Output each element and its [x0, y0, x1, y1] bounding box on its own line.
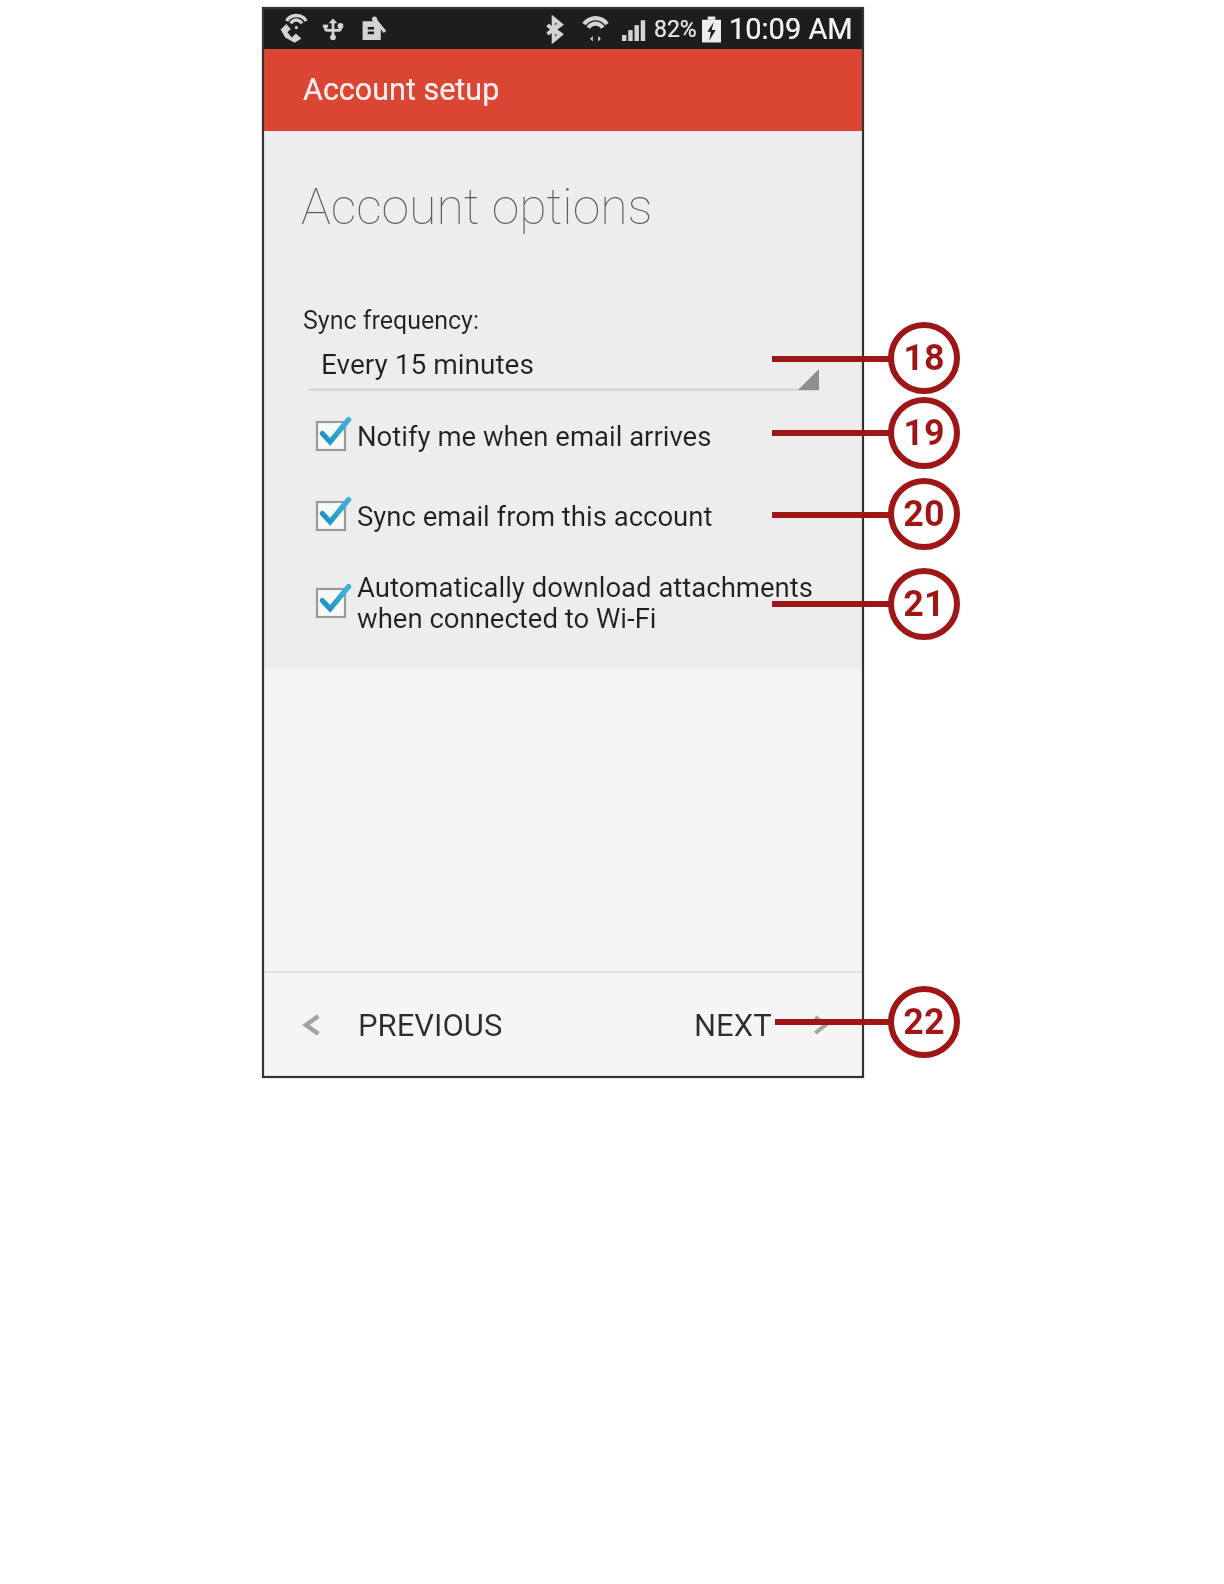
- staticText: 20: [903, 493, 945, 535]
- staticText: 10:09 AM: [729, 12, 853, 46]
- staticText: Notify me when email arrives: [357, 420, 712, 452]
- staticText: 82%: [654, 16, 697, 43]
- staticText: NEXT: [694, 1007, 772, 1043]
- staticText: 21: [903, 583, 945, 625]
- staticText: Account options: [301, 178, 653, 237]
- staticText: PREVIOUS: [358, 1007, 503, 1043]
- staticText: 19: [903, 412, 945, 454]
- staticText: Every 15 minutes: [321, 348, 534, 381]
- button[interactable]: Previous: [304, 1007, 503, 1043]
- staticText: Automatically download attachments when …: [357, 571, 813, 634]
- staticText: Sync frequency:: [303, 306, 479, 335]
- button[interactable]: Notify me when email arrives: [317, 418, 817, 454]
- staticText: 22: [903, 1001, 945, 1043]
- staticText: Sync email from this account: [357, 500, 713, 532]
- button[interactable]: Next: [694, 1007, 827, 1043]
- staticText: Account setup: [303, 72, 500, 108]
- staticText: 18: [903, 337, 945, 379]
- button[interactable]: Automatically download attachments when …: [317, 569, 817, 636]
- button[interactable]: Sync email from this account: [317, 498, 817, 534]
- button[interactable]: Sync frequency: Every 15 minutes: [308, 343, 820, 391]
